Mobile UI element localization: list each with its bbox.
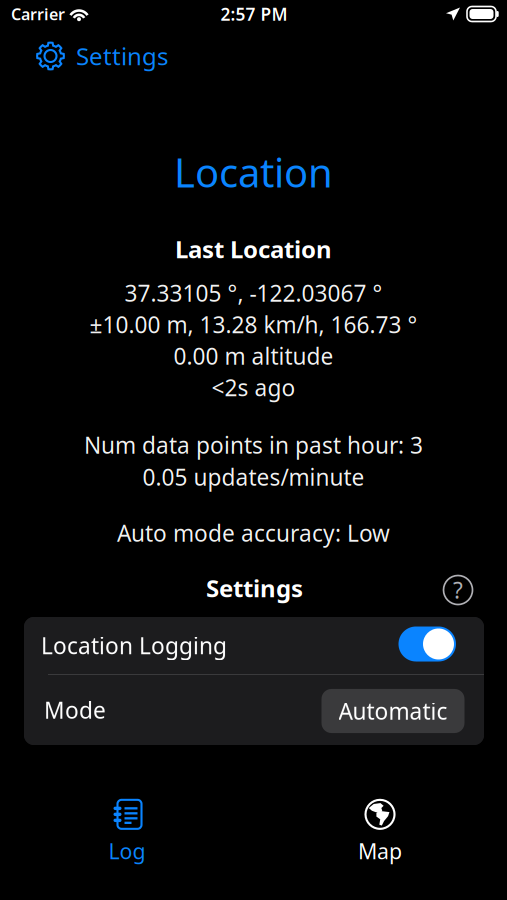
button[interactable]: Map	[320, 797, 440, 867]
staticText: Location	[174, 145, 333, 198]
staticText: Automatic	[338, 696, 447, 726]
staticText: Auto mode accuracy: Low	[117, 518, 390, 548]
staticText: Location Logging	[41, 630, 227, 660]
staticText: Last Location	[175, 233, 332, 265]
staticText: 0.05 updates/minute	[142, 462, 364, 492]
staticText: Log	[108, 837, 145, 865]
staticText: Map	[358, 837, 402, 865]
button[interactable]: Help	[443, 575, 472, 604]
staticText: Settings	[76, 40, 168, 72]
staticText: 37.33105 °, -122.03067 °	[124, 278, 382, 308]
button[interactable]: Settings	[32, 34, 172, 78]
staticText: Num data points in past hour: 3	[84, 430, 423, 460]
button[interactable]: Log	[67, 797, 187, 867]
staticText: Carrier	[11, 3, 65, 25]
staticText: <2s ago	[211, 372, 295, 402]
button[interactable]: Location Logging	[24, 617, 484, 674]
staticText: Settings	[206, 572, 303, 604]
staticText: 0.00 m altitude	[173, 341, 333, 371]
staticText: ±10.00 m, 13.28 km/h, 166.73 °	[89, 309, 417, 339]
button[interactable]: Mode	[24, 675, 484, 745]
staticText: ?	[453, 575, 463, 605]
staticText: 2:57 PM	[220, 2, 287, 25]
staticText: Mode	[44, 695, 106, 725]
